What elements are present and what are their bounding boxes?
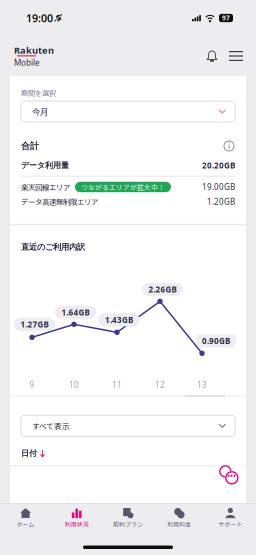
staticText: データ高速無制限エリア — [21, 196, 98, 207]
staticText: 利用料金 — [167, 520, 191, 528]
staticText: Rakuten — [14, 44, 54, 56]
staticText: 楽天回線エリア — [21, 182, 70, 192]
button[interactable]: 日付 — [10, 436, 246, 465]
button[interactable]: メニュー — [224, 44, 248, 68]
staticText: サポート — [218, 520, 242, 528]
button[interactable]: サポート — [205, 503, 256, 532]
staticText: 契約プラン — [113, 520, 143, 528]
button[interactable]: 今月 — [21, 101, 235, 122]
staticText: 0.90GB — [202, 335, 230, 346]
staticText: 11 — [112, 379, 122, 390]
staticText: 19.00GB — [202, 182, 235, 192]
staticText: 利用状況 — [65, 520, 89, 528]
button[interactable]: 利用状況 — [51, 503, 102, 532]
staticText: ••• — [227, 472, 236, 481]
staticText: i — [228, 141, 230, 151]
staticText: 今月 — [32, 106, 48, 118]
staticText: 97 — [222, 14, 230, 22]
staticText: Mobile — [14, 57, 40, 68]
staticText: 9 — [29, 379, 34, 390]
button[interactable]: 説明を見る — [223, 140, 235, 152]
staticText: 1.27GB — [20, 319, 48, 330]
staticText: 20.20GB — [202, 160, 235, 171]
button[interactable]: すべて表示 — [21, 415, 235, 436]
staticText: 12 — [155, 379, 165, 390]
staticText: 1.64GB — [61, 307, 89, 318]
staticText: すべて表示 — [32, 420, 70, 431]
staticText: 1.20GB — [207, 196, 235, 207]
staticText: 19:00 — [26, 11, 53, 25]
button[interactable]: ホーム — [0, 503, 51, 532]
staticText: 期間を選択 — [21, 88, 56, 98]
button[interactable]: お知らせ — [200, 44, 224, 68]
staticText: データ利用量 — [21, 160, 69, 170]
staticText: ホーム — [17, 520, 35, 528]
staticText: 直近のご利用内訳 — [21, 242, 85, 252]
staticText: 1.43GB — [105, 314, 133, 325]
button[interactable]: 利用料金 — [154, 503, 205, 532]
button[interactable]: チャットで相談 — [210, 456, 248, 494]
staticText: 13 — [197, 379, 207, 390]
button[interactable]: 契約プラン — [102, 503, 154, 532]
staticText: 2.26GB — [148, 284, 176, 295]
staticText: 10 — [69, 379, 79, 390]
staticText: 合計 — [21, 140, 39, 152]
staticText: つながるエリアが拡大中！ — [81, 182, 165, 192]
staticText: 日付 — [21, 448, 37, 458]
